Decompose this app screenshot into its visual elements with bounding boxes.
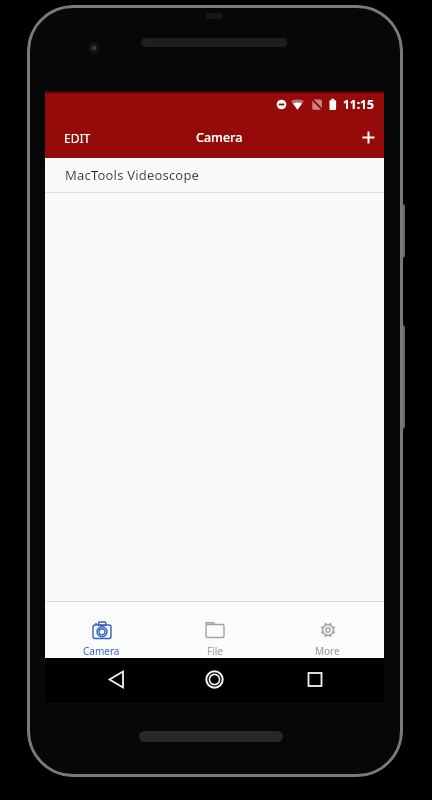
staticText: EDIT	[64, 130, 91, 146]
staticText: 11:15	[343, 96, 374, 112]
staticText: Camera	[196, 129, 243, 146]
staticText: File	[207, 644, 223, 658]
staticText: MacTools Videoscope	[65, 166, 200, 184]
staticText: More	[315, 644, 340, 658]
staticText: Camera	[83, 644, 120, 658]
